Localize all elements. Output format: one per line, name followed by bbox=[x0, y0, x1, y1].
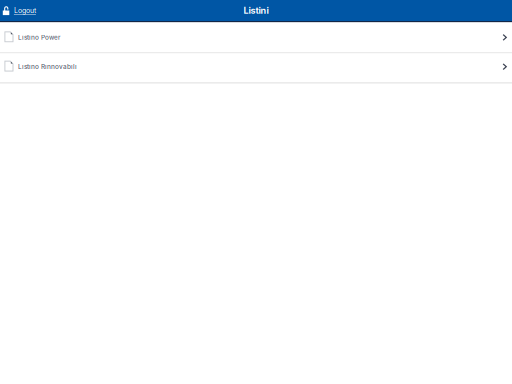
button[interactable]: Listino Power bbox=[0, 22, 512, 53]
staticText: Listini bbox=[243, 5, 268, 16]
button[interactable]: Listino Rinnovabili bbox=[0, 53, 512, 83]
button[interactable]: Logout bbox=[0, 5, 40, 16]
staticText: Listino Rinnovabili bbox=[18, 63, 77, 70]
staticText: Logout bbox=[14, 6, 36, 15]
staticText: Listino Power bbox=[18, 33, 60, 41]
